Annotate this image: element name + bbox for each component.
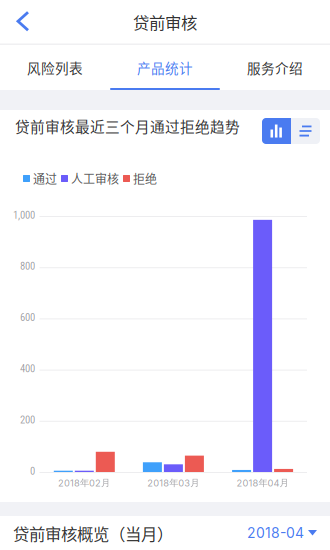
- staticText: 风险列表: [27, 58, 83, 77]
- staticText: 0: [30, 465, 35, 477]
- button[interactable]: 产品统计: [110, 45, 220, 90]
- staticText: 600: [20, 311, 35, 324]
- staticText: 2018年02月: [58, 477, 110, 489]
- staticText: 贷前审核概览（当月）: [13, 521, 173, 545]
- staticText: 1,000: [13, 209, 35, 221]
- staticText: 200: [20, 413, 35, 426]
- button[interactable]: 2018-04: [247, 518, 317, 547]
- button[interactable]: 服务介绍: [220, 45, 330, 90]
- staticText: 800: [20, 260, 35, 272]
- button[interactable]: Back: [0, 0, 30, 44]
- button[interactable]: 风险列表: [0, 45, 110, 90]
- button[interactable]: List view: [291, 118, 320, 144]
- staticText: 通过: [33, 170, 57, 187]
- staticText: 服务介绍: [247, 58, 303, 77]
- staticText: 贷前审核最近三个月通过拒绝趋势: [15, 115, 240, 137]
- staticText: 400: [20, 362, 35, 375]
- staticText: 人工审核: [71, 170, 119, 187]
- staticText: 产品统计: [137, 58, 193, 77]
- staticText: 2018年03月: [147, 477, 199, 489]
- button[interactable]: Bar chart view: [262, 118, 291, 144]
- staticText: 贷前审核: [133, 10, 197, 34]
- staticText: 拒绝: [133, 170, 157, 187]
- staticText: 2018-04: [247, 524, 304, 541]
- staticText: 2018年04月: [236, 477, 288, 489]
